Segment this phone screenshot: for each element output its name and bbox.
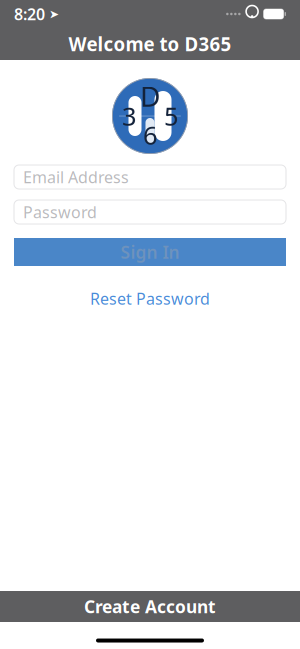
- button[interactable]: Create Account: [0, 591, 300, 622]
- button[interactable]: Reset Password: [76, 282, 224, 315]
- staticText: Password: [23, 201, 97, 223]
- staticText: Sign In: [120, 240, 179, 263]
- staticText: Create Account: [84, 595, 216, 618]
- staticText: Welcome to D365: [68, 32, 231, 56]
- staticText: D: [140, 77, 160, 115]
- staticText: ➤: [45, 7, 59, 21]
- button[interactable]: Sign In: [14, 238, 286, 266]
- staticText: 6: [143, 118, 157, 152]
- staticText: 8:20: [14, 3, 45, 25]
- staticText: 5: [164, 99, 178, 133]
- staticText: Reset Password: [90, 288, 210, 309]
- staticText: Email Address: [23, 166, 129, 188]
- staticText: 3: [122, 99, 136, 133]
